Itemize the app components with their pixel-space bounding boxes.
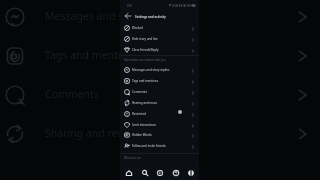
staticText: Sharing and reuse	[132, 101, 158, 105]
staticText: Close friends/Reply	[132, 48, 159, 52]
button[interactable]: Tags and mentions	[120, 76, 199, 87]
button[interactable]: Shop	[171, 168, 181, 178]
staticText: Hide story and live	[132, 37, 158, 41]
staticText: Sharing and reu	[45, 126, 124, 140]
staticText: Limit interactions	[132, 123, 156, 127]
button[interactable]: Search	[140, 168, 150, 178]
button[interactable]: Messages and story replies	[120, 65, 199, 76]
button[interactable]: Close friends/Reply	[120, 45, 199, 56]
staticText: Tags and menti	[45, 48, 121, 62]
staticText: How others can interact with you	[124, 58, 166, 62]
staticText: What you see	[124, 156, 142, 160]
staticText: Comments	[132, 90, 148, 94]
staticText: Tags and mentions	[132, 79, 159, 83]
staticText: Comments	[45, 87, 99, 101]
button[interactable]: Home	[124, 168, 134, 178]
button[interactable]: Blocked	[120, 23, 199, 34]
button[interactable]: Restricted	[120, 109, 199, 120]
button[interactable]: Profile	[186, 168, 196, 178]
button[interactable]: Hidden Words	[120, 130, 199, 141]
button[interactable]: Hide story and live	[120, 34, 199, 45]
button[interactable]: Back	[123, 11, 133, 21]
staticText: Blocked	[132, 26, 143, 30]
staticText: Messages and story replies	[132, 68, 170, 72]
staticText: Restricted	[132, 112, 146, 116]
staticText: Follow and invite friends	[132, 144, 166, 148]
button[interactable]: Follow and invite friends	[120, 141, 199, 152]
staticText: Hidden Words	[132, 133, 152, 137]
button[interactable]: Sharing and reuse	[120, 98, 199, 109]
button[interactable]: Reels	[155, 168, 165, 178]
button[interactable]: Comments	[120, 87, 199, 98]
button[interactable]: Limit interactions	[120, 120, 199, 131]
staticText: Messages and s	[45, 9, 124, 23]
staticText: Settings and activity	[135, 15, 166, 19]
